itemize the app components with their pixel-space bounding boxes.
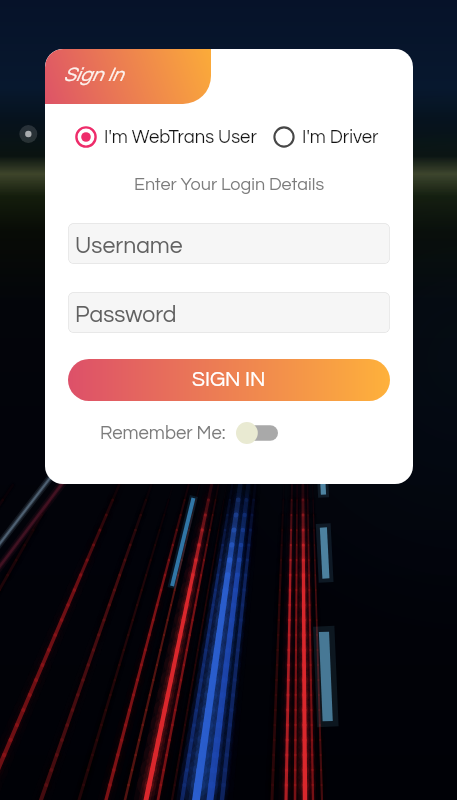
button[interactable]: Remember Me toggle	[235, 418, 278, 448]
button[interactable]: Password	[68, 292, 390, 333]
button[interactable]: SIGN IN	[68, 359, 390, 401]
staticText: Password	[75, 303, 177, 327]
button[interactable]: Username	[68, 223, 390, 264]
staticText: SIGN IN	[192, 369, 266, 391]
staticText: Remember Me:	[100, 424, 226, 443]
button[interactable]: I'm WebTrans User	[74, 125, 257, 149]
button[interactable]: I'm Driver	[272, 125, 379, 149]
staticText: I'm WebTrans User	[104, 128, 257, 147]
staticText: Username	[75, 234, 183, 258]
staticText: Enter Your Login Details	[45, 175, 413, 194]
button[interactable]: Sign In	[45, 49, 211, 104]
staticText: Sign In	[63, 65, 123, 86]
staticText: I'm Driver	[302, 128, 379, 147]
